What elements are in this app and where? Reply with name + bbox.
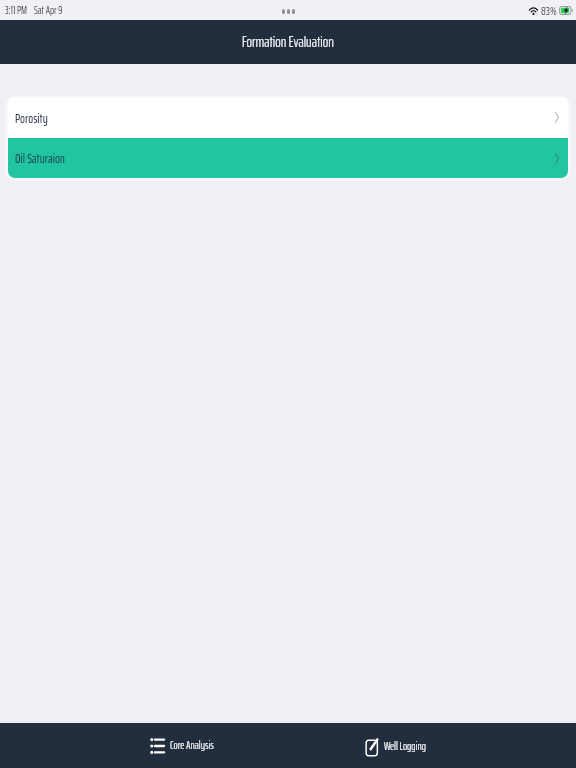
staticText: 3:11 PM (5, 2, 28, 19)
button[interactable]: Oil Saturaion (8, 138, 568, 178)
button[interactable]: Porosity (8, 97, 568, 138)
staticText: 83% (541, 1, 557, 20)
staticText: Well Logging (384, 738, 426, 755)
staticText: Formation Evaluation (242, 31, 334, 54)
staticText: Core Analysis (170, 737, 214, 754)
staticText: Porosity (15, 108, 48, 128)
staticText: Sat Apr 9 (34, 2, 63, 19)
staticText: Oil Saturaion (15, 148, 65, 168)
button[interactable]: Well Logging tab (365, 723, 426, 768)
button[interactable]: Core Analysis tab (150, 723, 214, 768)
